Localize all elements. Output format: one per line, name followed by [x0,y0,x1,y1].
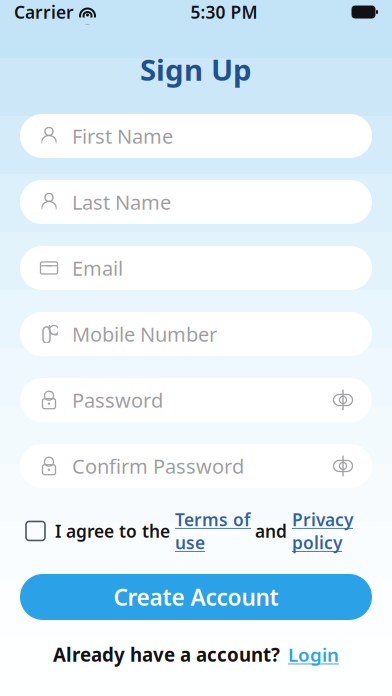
staticText: Already have a account? [53,642,280,667]
staticText: and [250,519,292,542]
staticText: Carrier [14,0,74,23]
staticText: Confirm Password [72,453,244,479]
staticText: First Name [72,123,173,149]
button[interactable]: I agree to the terms [26,521,55,540]
staticText: Privacy policy [292,508,353,554]
button[interactable]: Show Password [332,378,372,422]
staticText: Password [72,387,163,413]
staticText: Sign Up [140,50,252,89]
staticText: Email [72,255,123,281]
staticText: Mobile Number [72,321,217,347]
staticText: Create Account [113,582,278,612]
button[interactable]: Show Confirm Password [332,444,372,488]
button[interactable]: Login [288,642,339,667]
button[interactable]: Terms of use [175,508,250,554]
button[interactable]: Privacy policy [292,508,353,554]
staticText: 5:30 PM [190,0,257,23]
staticText: Last Name [72,189,171,215]
staticText: Login [288,642,339,667]
button[interactable]: Create Account [20,574,372,620]
staticText: I agree to the [55,519,175,542]
staticText: Terms of use [175,508,250,554]
